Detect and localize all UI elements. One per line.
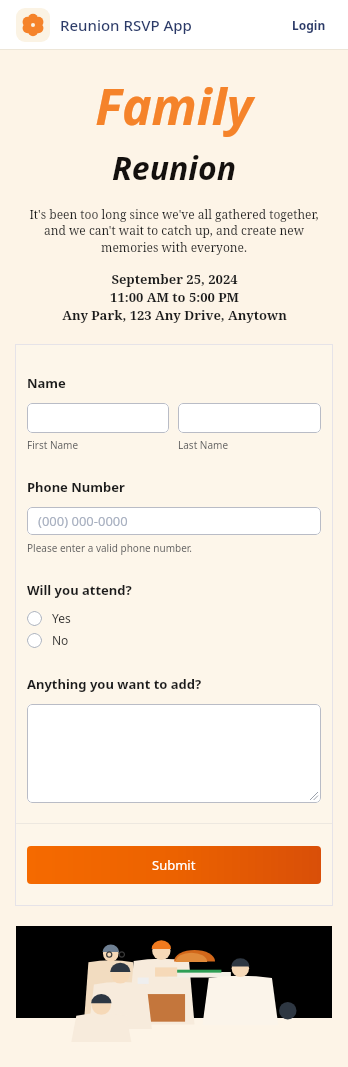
button[interactable] <box>27 704 321 803</box>
staticText: Yes <box>52 610 71 626</box>
staticText: Reunion <box>112 146 236 190</box>
staticText: Please enter a valid phone number. <box>27 541 193 555</box>
button[interactable]: Login <box>286 11 332 39</box>
button[interactable]: Submit <box>27 846 321 884</box>
staticText: September 25, 2024 <box>111 270 238 288</box>
staticText: Family <box>95 72 253 140</box>
other: Family gathering illustration <box>16 926 332 1018</box>
staticText: First Name <box>27 438 79 452</box>
staticText: Login <box>292 17 326 33</box>
staticText: No <box>52 632 69 648</box>
button[interactable] <box>178 403 321 433</box>
staticText: Anything you want to add? <box>27 675 202 693</box>
button[interactable]: (000) 000-0000 <box>27 507 321 535</box>
staticText: (000) 000-0000 <box>38 512 128 530</box>
staticText: Reunion RSVP App <box>60 15 192 35</box>
staticText: Phone Number <box>27 478 125 496</box>
staticText: Submit <box>152 856 196 874</box>
button[interactable]: No <box>27 629 321 651</box>
button[interactable] <box>27 403 169 433</box>
staticText: 11:00 AM to 5:00 PM <box>110 288 239 306</box>
staticText: Name <box>27 374 66 392</box>
staticText: Last Name <box>178 438 229 452</box>
button[interactable]: Yes <box>27 607 321 629</box>
staticText: Any Park, 123 Any Drive, Anytown <box>62 306 287 324</box>
staticText: Will you attend? <box>27 581 132 599</box>
staticText: It's been too long since we've all gathe… <box>18 206 330 256</box>
button[interactable]: Reunion RSVP App <box>16 8 192 42</box>
